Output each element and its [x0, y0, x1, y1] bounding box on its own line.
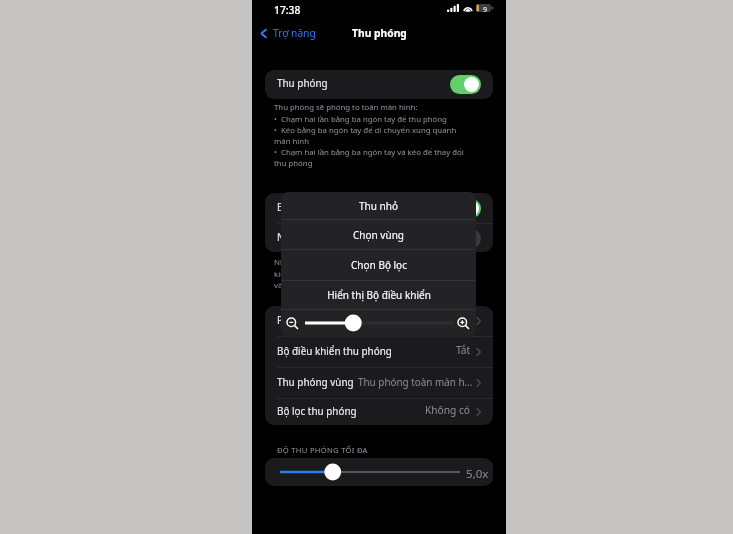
button[interactable]: Bộ lọc thu phóng	[265, 399, 493, 425]
staticText: Thu phóng toàn màn h…	[358, 375, 473, 388]
staticText: Hiển thị Bộ điều khiển	[327, 288, 431, 302]
staticText: 5,0x	[466, 466, 489, 482]
button[interactable]: Chọn vùng	[281, 220, 476, 249]
staticText: Thu nhỏ	[359, 199, 398, 213]
button[interactable]: Bộ điều khiển thu phóng	[265, 337, 493, 367]
staticText: Trợ năng	[273, 26, 316, 40]
button[interactable]: Trợ năng	[260, 26, 316, 40]
button[interactable]: Zoom level slider	[305, 314, 453, 332]
staticText: Thu phóng sẽ phóng to toàn màn hình: • C…	[274, 102, 468, 168]
button[interactable]: Hiển thị Bộ điều khiển	[281, 281, 476, 309]
button[interactable]: Zoom in	[458, 318, 468, 328]
button[interactable]: Phím tắt trợ năng	[265, 306, 493, 336]
button[interactable]: Thu phóng vùng	[265, 368, 493, 398]
staticText: Phím tắt trợ năng	[277, 313, 359, 326]
staticText: Bộ điều khiển thu phóng	[277, 344, 392, 357]
staticText: Thu phóng vùng	[277, 375, 354, 388]
staticText: Chọn vùng	[353, 228, 404, 242]
staticText: Không có	[425, 403, 471, 417]
button[interactable]: Zoom out	[287, 318, 297, 328]
button[interactable]	[450, 199, 481, 218]
button[interactable]	[450, 229, 481, 248]
button[interactable]: Bộ điều khiển thu phóng	[265, 193, 493, 223]
staticText: Nhấn đúp bằng ba ngón tay để kích hoạt h…	[274, 257, 468, 290]
button[interactable]: Thu nhỏ	[281, 192, 476, 219]
staticText: Nhấn đúp bằng ba ngón tay	[277, 230, 408, 243]
staticText: Tắt	[456, 343, 471, 357]
staticText: 9	[483, 4, 488, 14]
staticText: Thu phóng	[277, 76, 328, 89]
button[interactable]: Thu phóng	[265, 70, 493, 99]
button[interactable]: Maximum zoom level slider	[265, 458, 493, 486]
staticText: Bộ lọc thu phóng	[277, 404, 357, 417]
staticText: Thu phóng	[352, 26, 407, 40]
staticText: ĐỘ THU PHÓNG TỐI ĐA	[277, 445, 368, 455]
button[interactable]: Nhấn đúp bằng ba ngón tay	[265, 224, 493, 252]
staticText: Chọn Bộ lọc	[351, 258, 407, 272]
button[interactable]: Chọn Bộ lọc	[281, 250, 476, 280]
staticText: Bộ điều khiển thu phóng	[277, 200, 392, 213]
button[interactable]	[450, 75, 481, 94]
staticText: 17:38	[274, 3, 301, 17]
